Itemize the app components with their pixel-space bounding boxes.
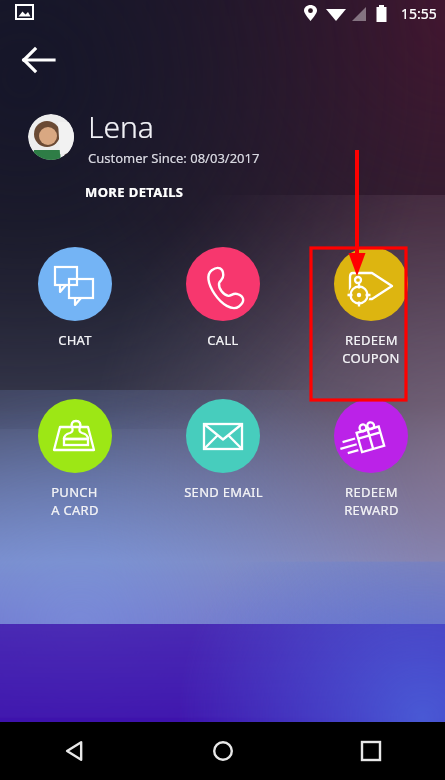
button[interactable] (28, 114, 74, 160)
staticText: COUPON (342, 349, 400, 367)
button[interactable]: Home (149, 722, 297, 780)
button[interactable]: SEND EMAIL (149, 397, 297, 503)
staticText: 15:55 (401, 4, 437, 23)
staticText: CHAT (58, 331, 92, 349)
staticText: A CARD (51, 501, 99, 519)
staticText: Customer Since: 08/03/2017 (88, 149, 260, 167)
staticText: REDEEM (345, 331, 398, 349)
button[interactable]: CHAT (0, 245, 149, 351)
staticText: PUNCH (51, 483, 98, 501)
button[interactable]: Back (0, 722, 149, 780)
button[interactable]: CALL (149, 245, 297, 351)
button[interactable]: REDEEM (297, 245, 445, 369)
button[interactable]: MORE DETAILS (85, 181, 184, 203)
staticText: REDEEM (345, 483, 398, 501)
button[interactable]: REDEEM (297, 397, 445, 521)
staticText: CALL (207, 331, 239, 349)
button[interactable]: Back (16, 36, 64, 84)
button[interactable]: Recent apps (297, 722, 445, 780)
staticText: REWARD (344, 501, 399, 519)
staticText: MORE DETAILS (85, 183, 184, 201)
staticText: Lena (88, 106, 154, 147)
staticText: SEND EMAIL (184, 483, 263, 501)
button[interactable]: PUNCH (0, 397, 149, 521)
